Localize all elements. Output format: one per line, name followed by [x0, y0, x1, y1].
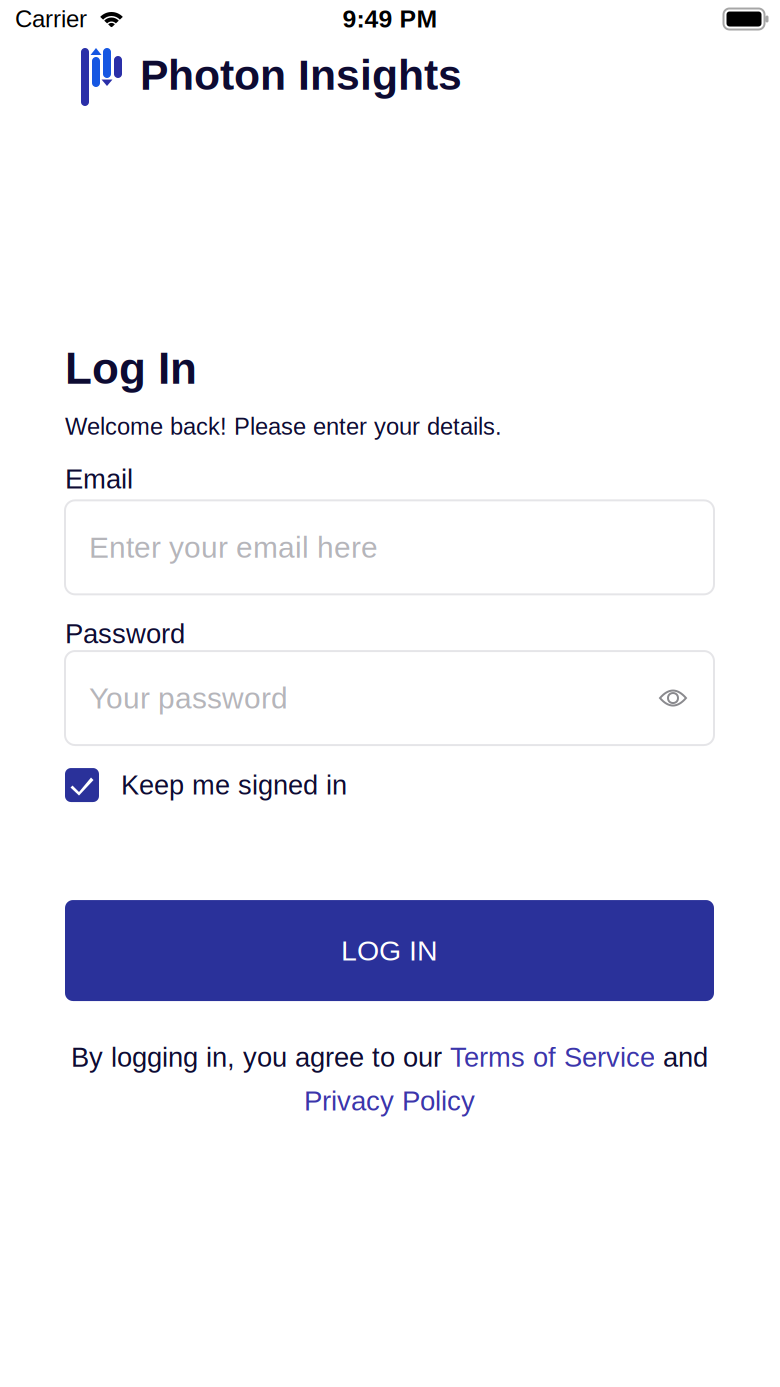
staticText: 9:49 PM	[342, 5, 437, 33]
staticText: Enter your email here	[89, 531, 378, 564]
staticText: Email	[65, 464, 133, 494]
staticText: Welcome back! Please enter your details.	[65, 413, 502, 440]
button[interactable]: Show password	[658, 683, 688, 713]
staticText: Your password	[89, 681, 288, 715]
staticText: Privacy Policy	[304, 1086, 475, 1116]
button[interactable]: Terms of Service	[450, 1042, 655, 1072]
staticText: and	[655, 1042, 708, 1072]
staticText: LOG IN	[341, 935, 438, 966]
staticText: Log In	[65, 344, 197, 393]
staticText: Password	[65, 618, 185, 649]
staticText: Photon Insights	[140, 51, 462, 99]
staticText: Carrier	[15, 6, 87, 32]
button[interactable]: Privacy Policy	[304, 1086, 475, 1116]
staticText: Keep me signed in	[121, 770, 347, 800]
staticText: Terms of Service	[450, 1042, 655, 1072]
button[interactable]: LOG IN	[65, 900, 714, 1001]
button[interactable]: Keep me signed in	[65, 767, 714, 803]
staticText: By logging in, you agree to our	[71, 1042, 450, 1072]
